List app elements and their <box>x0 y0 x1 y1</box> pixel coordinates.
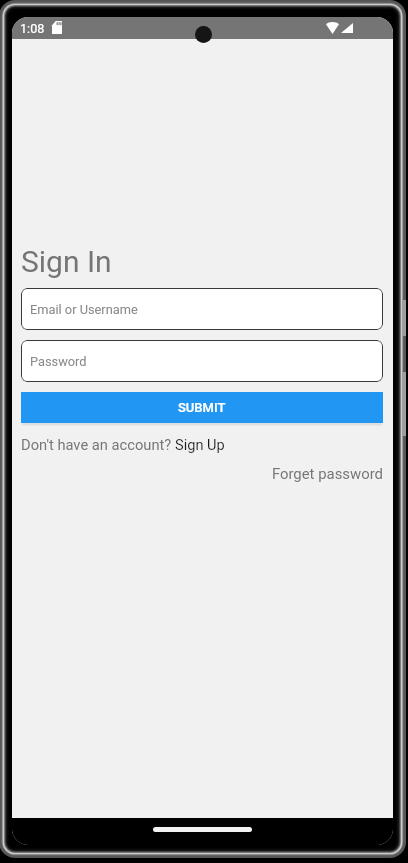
other: Signal <box>341 23 353 33</box>
staticText: Don't have an account? <box>21 436 175 453</box>
button[interactable]: SUBMIT <box>21 392 383 423</box>
button[interactable]: Password <box>21 340 383 382</box>
staticText: Email or Username <box>30 302 138 317</box>
staticText: 1:08 <box>20 21 45 36</box>
button[interactable]: Forget password <box>12 465 383 482</box>
staticText: Sign In <box>21 244 112 279</box>
other: SD card <box>52 21 62 34</box>
button[interactable]: Sign Up <box>175 436 225 453</box>
staticText: SUBMIT <box>178 400 226 415</box>
button[interactable]: Email or Username <box>21 288 383 330</box>
staticText: Password <box>30 354 87 369</box>
other: Wi-Fi <box>326 22 339 34</box>
